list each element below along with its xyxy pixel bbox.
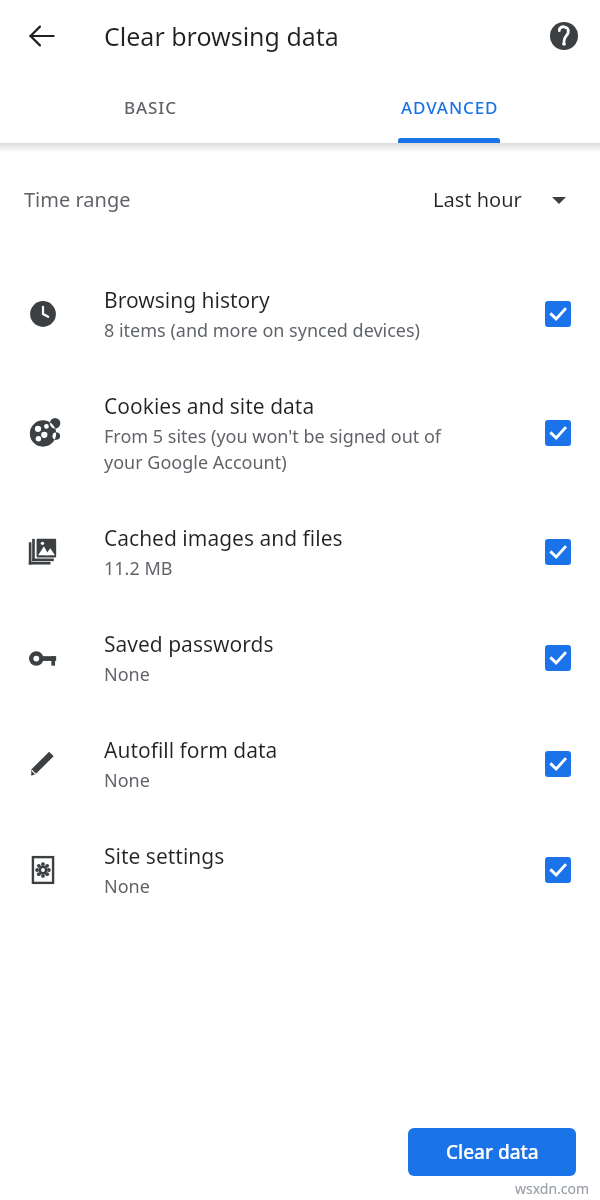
button[interactable]: Saved passwords bbox=[0, 605, 600, 711]
button[interactable]: Autofill form data checkbox bbox=[538, 744, 578, 784]
button[interactable]: Help bbox=[540, 12, 588, 60]
staticText: None bbox=[104, 768, 150, 793]
staticText: Last hour bbox=[433, 186, 522, 213]
button[interactable]: Browsing history checkbox bbox=[538, 294, 578, 334]
button[interactable]: Site settings bbox=[0, 817, 600, 923]
button[interactable]: Cookies and site data bbox=[0, 367, 600, 499]
button[interactable]: BASIC bbox=[0, 72, 300, 143]
button[interactable]: Clear data bbox=[408, 1128, 576, 1176]
staticText: None bbox=[104, 874, 150, 899]
staticText: Site settings bbox=[104, 842, 225, 871]
staticText: Clear data bbox=[446, 1139, 539, 1165]
button[interactable]: Site settings checkbox bbox=[538, 850, 578, 890]
staticText: Cookies and site data bbox=[104, 392, 315, 421]
button[interactable]: Autofill form data bbox=[0, 711, 600, 817]
button[interactable]: Back bbox=[18, 12, 66, 60]
staticText: Saved passwords bbox=[104, 630, 274, 659]
button[interactable]: Cached images and files bbox=[0, 499, 600, 605]
staticText: Cached images and files bbox=[104, 524, 343, 553]
button[interactable]: Cached images and files checkbox bbox=[538, 532, 578, 572]
button[interactable]: Browsing history bbox=[0, 261, 600, 367]
button[interactable]: Saved passwords checkbox bbox=[538, 638, 578, 678]
staticText: 8 items (and more on synced devices) bbox=[104, 318, 421, 343]
button[interactable]: Cookies and site data checkbox bbox=[538, 413, 578, 453]
staticText: Clear browsing data bbox=[104, 19, 339, 53]
staticText: Autofill form data bbox=[104, 736, 278, 765]
button[interactable]: Time range bbox=[0, 169, 600, 229]
staticText: BASIC bbox=[124, 96, 177, 119]
staticText: None bbox=[104, 662, 150, 687]
staticText: wsxdn.com bbox=[515, 1179, 590, 1198]
staticText: Browsing history bbox=[104, 286, 270, 315]
staticText: Time range bbox=[24, 186, 131, 213]
staticText: From 5 sites (you won't be signed out of… bbox=[104, 424, 442, 474]
staticText: 11.2 MB bbox=[104, 556, 173, 581]
staticText: ADVANCED bbox=[401, 96, 499, 119]
button[interactable]: ADVANCED bbox=[300, 72, 600, 143]
